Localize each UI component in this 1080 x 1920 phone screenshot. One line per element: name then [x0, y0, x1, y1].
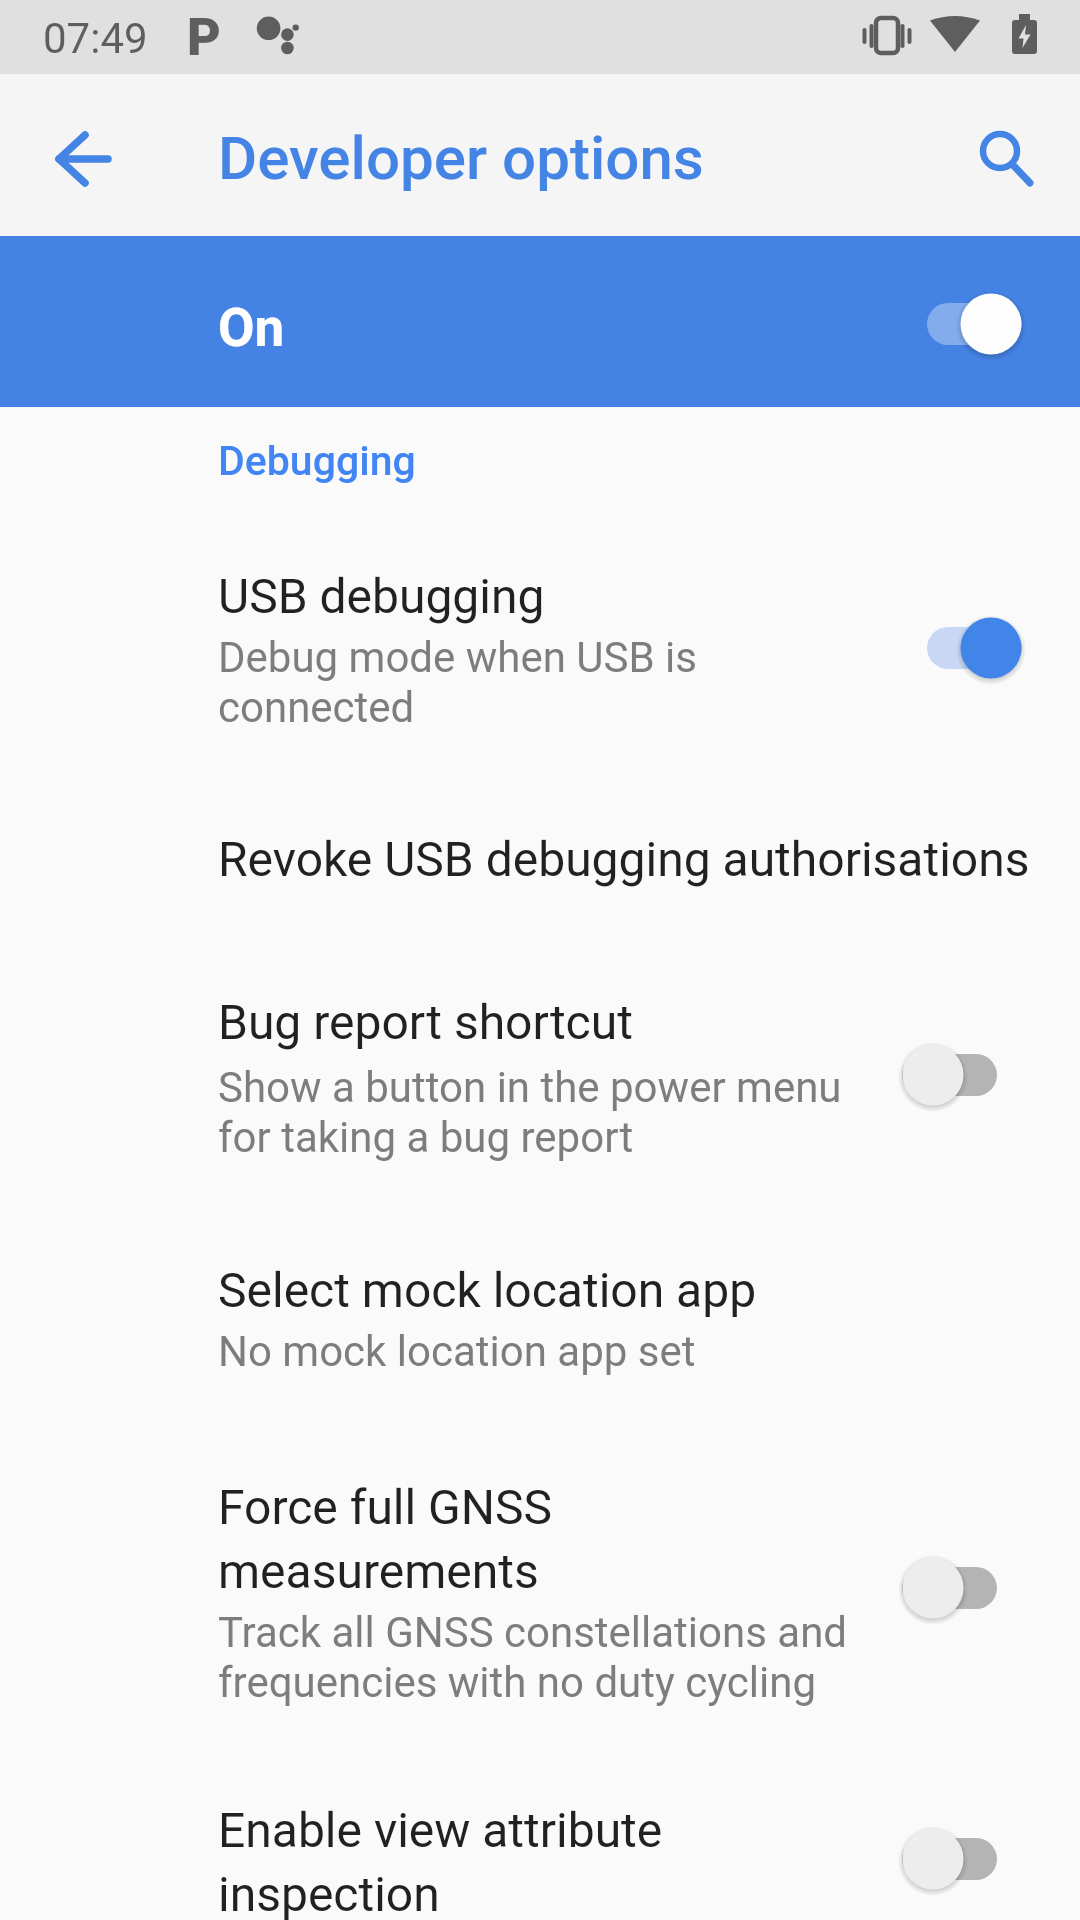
button[interactable]: [902, 1557, 1022, 1619]
staticText: No mock location app set: [218, 1327, 696, 1376]
button[interactable]: [0, 1460, 1080, 1730]
button[interactable]: [902, 1044, 1022, 1106]
button[interactable]: [0, 1245, 1080, 1405]
button[interactable]: [902, 617, 1022, 679]
staticText: Revoke USB debugging authorisations: [218, 831, 1030, 887]
button[interactable]: [975, 124, 1037, 188]
button[interactable]: [902, 1828, 1022, 1890]
staticText: Debug mode when USB is connected: [218, 633, 697, 732]
staticText: USB debugging: [218, 568, 545, 624]
button[interactable]: [0, 1780, 1080, 1920]
button[interactable]: On: [0, 236, 1080, 407]
staticText: Track all GNSS constellations and freque…: [218, 1608, 848, 1707]
staticText: Show a button in the power menu for taki…: [218, 1063, 842, 1162]
staticText: Debugging: [218, 437, 416, 485]
staticText: Force full GNSS measurements: [218, 1479, 553, 1599]
staticText: Bug report shortcut: [218, 994, 633, 1050]
button[interactable]: [55, 131, 113, 187]
button[interactable]: [0, 810, 1080, 930]
staticText: Developer options: [218, 123, 704, 193]
staticText: Enable view attribute inspection: [218, 1802, 663, 1920]
button[interactable]: [0, 545, 1080, 755]
staticText: 07:49: [43, 14, 148, 63]
staticText: P: [187, 7, 221, 68]
button[interactable]: [902, 293, 1022, 355]
staticText: Select mock location app: [218, 1262, 757, 1318]
button[interactable]: [0, 975, 1080, 1185]
staticText: On: [218, 297, 285, 359]
